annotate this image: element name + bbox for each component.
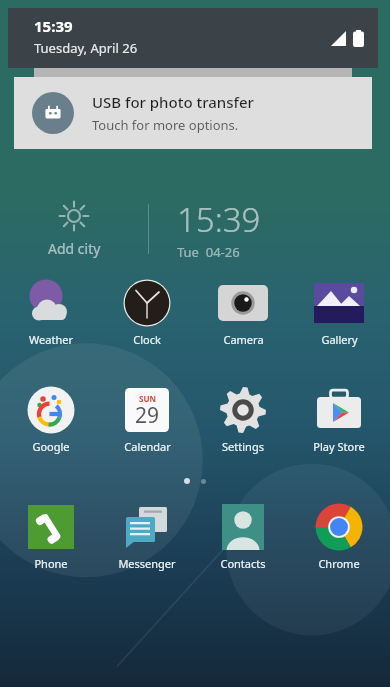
button[interactable]: Phone xyxy=(6,502,96,571)
staticText: Chrome xyxy=(318,556,360,571)
staticText: Settings xyxy=(222,439,264,454)
other: Messenger xyxy=(122,502,172,552)
staticText: Google xyxy=(32,439,70,454)
staticText: SUN xyxy=(139,393,156,404)
other: Calendar xyxy=(122,385,172,435)
staticText: Camera xyxy=(223,332,264,347)
button[interactable]: Clock xyxy=(102,278,192,347)
button[interactable]: Messenger xyxy=(102,502,192,571)
staticText: Add city xyxy=(48,239,101,258)
staticText: 15:39 xyxy=(177,197,261,242)
staticText: Phone xyxy=(34,556,68,571)
other: Google xyxy=(26,385,76,435)
other: Clock xyxy=(122,278,172,328)
button[interactable]: Add city xyxy=(0,192,390,266)
button[interactable]: Chrome xyxy=(294,502,384,571)
staticText: 29 xyxy=(135,401,160,430)
button[interactable]: Contacts xyxy=(198,502,288,571)
other: Gallery xyxy=(314,278,364,328)
staticText: Tue 04-26 xyxy=(177,243,240,261)
other: Weather xyxy=(26,278,76,328)
staticText: Play Store xyxy=(313,439,365,454)
staticText: Calendar xyxy=(124,439,171,454)
other: Play Store xyxy=(314,385,364,435)
other: Chrome xyxy=(314,502,364,552)
button[interactable]: Settings xyxy=(198,385,288,454)
staticText: Tuesday, April 26 xyxy=(34,39,138,57)
staticText: Gallery xyxy=(321,332,358,347)
other: Settings xyxy=(218,385,268,435)
staticText: Touch for more options. xyxy=(92,116,239,134)
other: Camera xyxy=(218,278,268,328)
button[interactable]: Google xyxy=(6,385,96,454)
staticText: 15:39 xyxy=(34,16,73,36)
other: Phone xyxy=(26,502,76,552)
button[interactable]: Camera xyxy=(198,278,288,347)
button[interactable]: Weather xyxy=(6,278,96,347)
staticText: USB for photo transfer xyxy=(92,92,254,112)
button[interactable]: Gallery xyxy=(294,278,384,347)
other: Contacts xyxy=(218,502,268,552)
button[interactable]: Calendar xyxy=(102,385,192,454)
button[interactable]: Play Store xyxy=(294,385,384,454)
staticText: Weather xyxy=(29,332,73,347)
staticText: Clock xyxy=(133,332,161,347)
staticText: Messenger xyxy=(118,556,176,571)
button[interactable]: USB for photo transfer xyxy=(14,77,372,149)
staticText: Contacts xyxy=(220,556,266,571)
